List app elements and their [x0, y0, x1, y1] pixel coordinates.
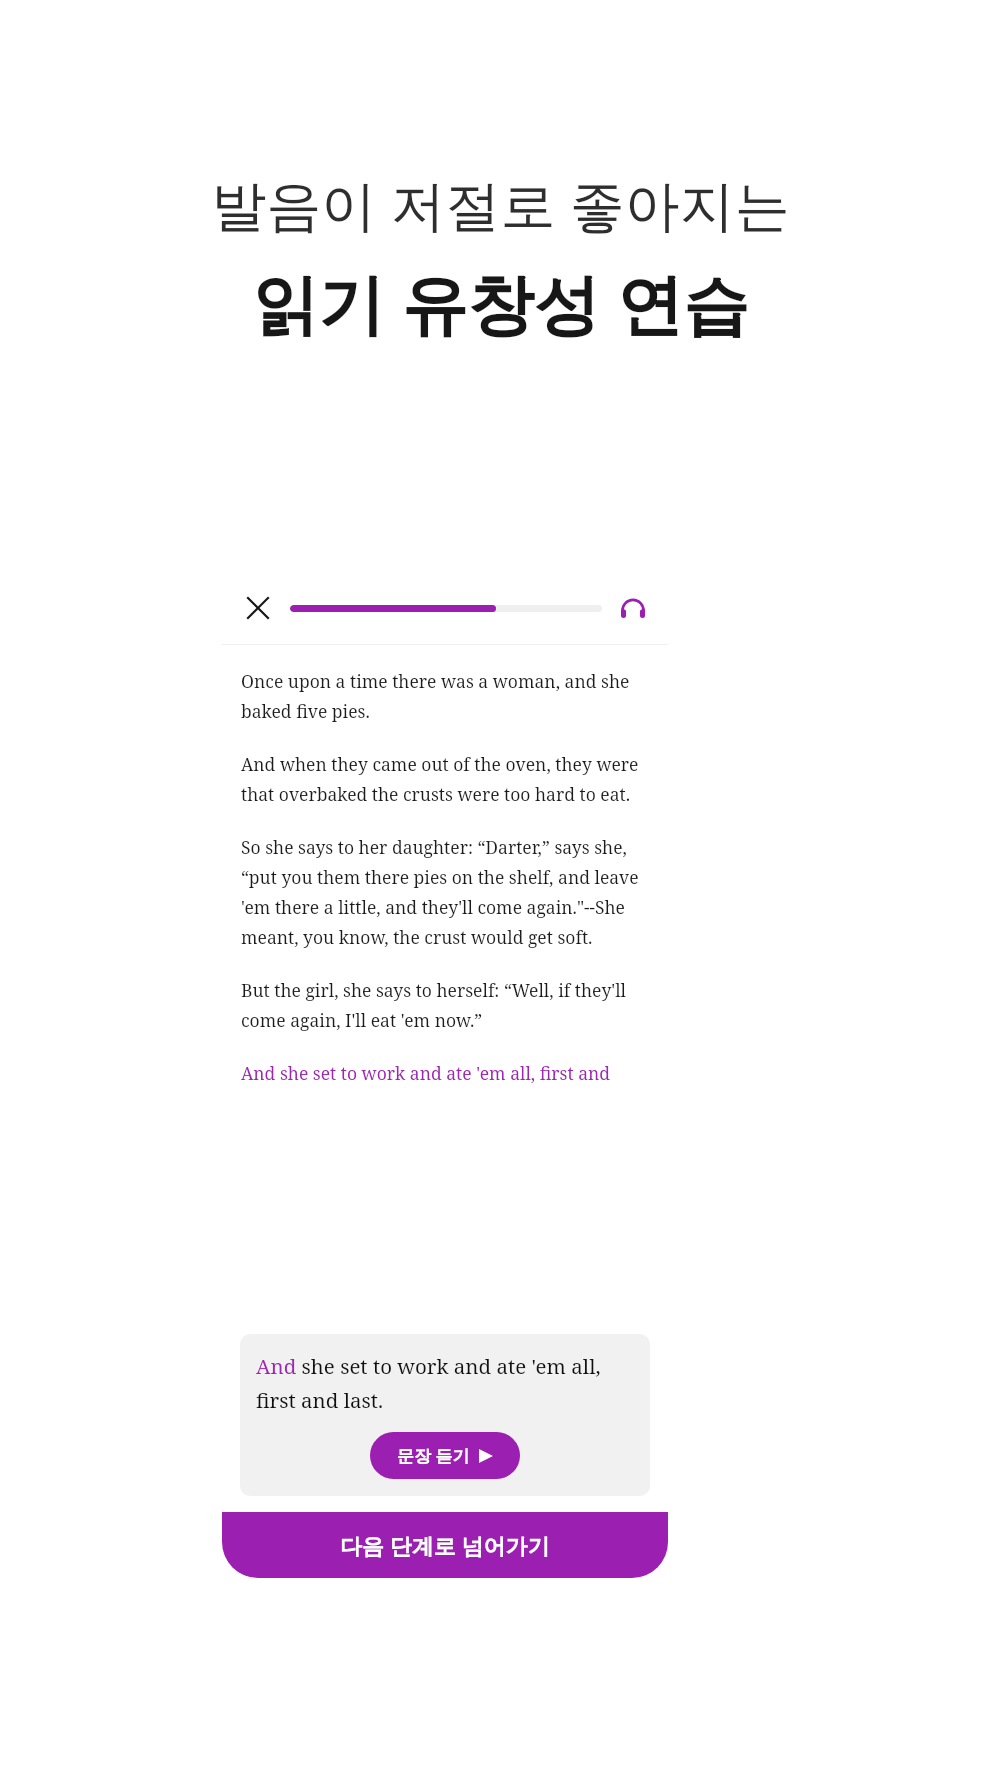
staticText: And she set to work and ate 'em all, fir…: [256, 1352, 634, 1414]
staticText: And she set to work and ate 'em all, fir…: [241, 1061, 611, 1085]
staticText: 다음 단계로 넘어가기: [340, 1530, 550, 1560]
staticText: 읽기 유창성 연습: [252, 257, 749, 347]
staticText: But the girl, she says to herself: “Well…: [241, 978, 649, 1032]
staticText: So she says to her daughter: “Darter,” s…: [241, 835, 649, 949]
button[interactable]: 문장 듣기: [370, 1432, 520, 1479]
staticText: 문장 듣기: [397, 1444, 470, 1467]
staticText: And when they came out of the oven, they…: [241, 752, 649, 806]
button[interactable]: Headphones: [616, 591, 650, 625]
staticText: 발음이 저절로 좋아지는: [211, 166, 790, 241]
button[interactable]: Close: [240, 590, 276, 626]
button[interactable]: 다음 단계로 넘어가기: [222, 1512, 668, 1578]
staticText: Once upon a time there was a woman, and …: [241, 669, 649, 723]
button[interactable]: And she set to work and ate 'em all, fir…: [240, 1334, 650, 1496]
